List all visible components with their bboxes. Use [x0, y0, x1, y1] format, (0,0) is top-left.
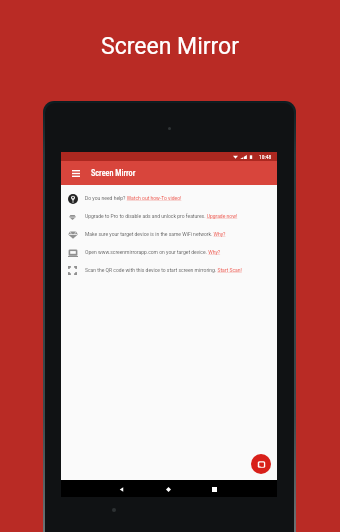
staticText: Do you need help? Watch out how-To video… — [85, 195, 182, 201]
button[interactable]: Back — [116, 484, 126, 494]
staticText: Make sure your target device is in the s… — [85, 231, 226, 237]
staticText: Scan the QR code with this device to sta… — [85, 267, 242, 273]
staticText: Screen Mirror — [91, 168, 136, 178]
staticText: Screen Mirror — [101, 33, 240, 60]
button[interactable]: Start screen mirroring — [251, 454, 271, 474]
button[interactable]: Do you need help? Watch out how-To video… — [61, 189, 277, 207]
button[interactable]: Upgrade to Pro to disable ads and unlock… — [61, 207, 277, 225]
button[interactable]: Home — [163, 484, 173, 494]
staticText: Open www.screenmirrorapp.com on your tar… — [85, 249, 221, 255]
button[interactable]: Open navigation menu — [69, 166, 83, 180]
button[interactable]: Make sure your target device is in the s… — [61, 225, 277, 243]
staticText: Upgrade to Pro to disable ads and unlock… — [85, 213, 238, 219]
button[interactable]: Open www.screenmirrorapp.com on your tar… — [61, 243, 277, 261]
button[interactable]: Scan the QR code with this device to sta… — [61, 261, 277, 279]
staticText: 10:48 — [259, 154, 272, 160]
button[interactable]: Recent apps — [209, 484, 219, 494]
